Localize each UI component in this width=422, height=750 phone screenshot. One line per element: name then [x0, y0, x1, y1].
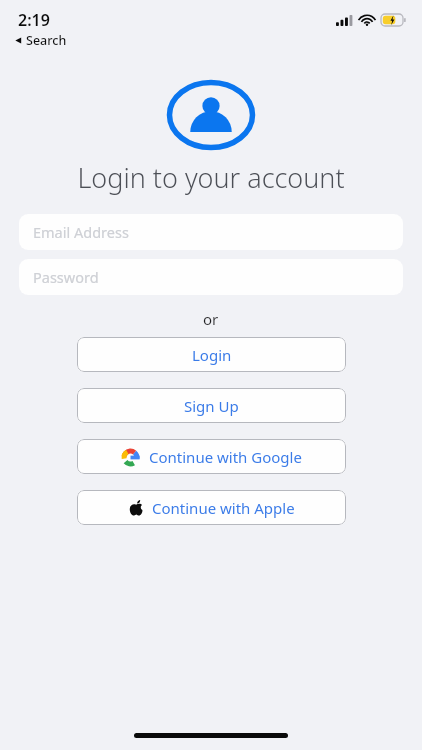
button[interactable]: Continue with Google [77, 439, 346, 474]
staticText: Login to your account [77, 159, 345, 196]
staticText: Password [33, 267, 99, 287]
other: Account avatar [167, 80, 255, 150]
button[interactable]: Password [19, 259, 403, 295]
staticText: 2:19 [18, 9, 50, 31]
button[interactable]: Login [77, 337, 346, 372]
staticText: Continue with Google [149, 447, 302, 467]
button[interactable]: Email Address [19, 214, 403, 250]
staticText: Email Address [33, 222, 129, 242]
staticText: Search [26, 32, 67, 49]
button[interactable]: Search [14, 32, 67, 49]
staticText: or [203, 309, 219, 329]
button[interactable]: Sign Up [77, 388, 346, 423]
button[interactable]: Continue with Apple [77, 490, 346, 525]
staticText: Continue with Apple [152, 498, 295, 518]
staticText: Login [192, 345, 232, 365]
staticText: Sign Up [184, 396, 239, 416]
